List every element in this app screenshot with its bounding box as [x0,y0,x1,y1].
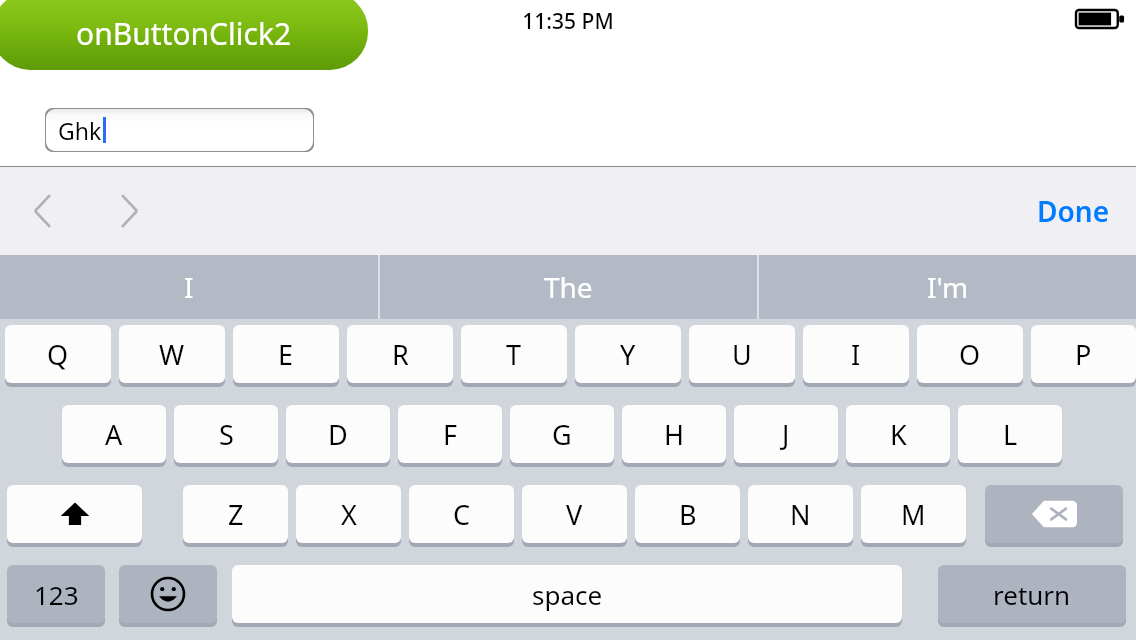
button[interactable]: X [296,485,401,545]
staticText: Ghk [58,115,102,146]
button[interactable]: Next field [100,182,158,240]
button[interactable]: onButtonClick2 [0,0,368,70]
staticText: 11:35 PM [0,7,1136,36]
button[interactable]: D [286,405,390,465]
button[interactable]: Y [575,325,681,385]
button[interactable]: return [938,565,1126,625]
button[interactable]: U [689,325,795,385]
staticText: Z [228,496,244,533]
button[interactable]: J [734,405,838,465]
button[interactable]: O [917,325,1023,385]
button[interactable]: The [380,255,757,319]
staticText: S [219,416,234,453]
button[interactable]: V [522,485,627,545]
button[interactable]: M [861,485,966,545]
staticText: R [392,336,409,373]
staticText: M [901,496,926,533]
button[interactable]: Q [5,325,111,385]
staticText: F [443,416,458,453]
button[interactable]: I [803,325,909,385]
button[interactable]: Z [183,485,288,545]
button[interactable]: Done [1029,184,1118,238]
button[interactable]: Shift [7,485,142,545]
staticText: J [782,416,790,453]
staticText: U [732,336,752,373]
staticText: D [328,416,348,453]
button[interactable]: L [958,405,1062,465]
button[interactable]: W [119,325,225,385]
button[interactable]: E [233,325,339,385]
staticText: V [566,496,583,533]
button[interactable]: B [635,485,740,545]
staticText: Y [620,336,636,373]
button[interactable]: space [232,565,902,625]
staticText: K [890,416,907,453]
button[interactable]: P [1031,325,1136,385]
button[interactable]: T [461,325,567,385]
button[interactable]: S [174,405,278,465]
staticText: H [664,416,685,453]
staticText: Done [1037,192,1110,230]
staticText: W [159,336,185,373]
button[interactable]: K [846,405,950,465]
button[interactable]: G [510,405,614,465]
staticText: X [341,496,357,533]
staticText: I [184,268,194,306]
staticText: G [552,416,572,453]
staticText: E [278,336,294,373]
button[interactable]: Ghk [45,108,314,152]
staticText: P [1075,336,1092,373]
button[interactable]: Previous field [14,182,72,240]
staticText: C [453,496,471,533]
staticText: onButtonClick2 [76,13,292,54]
staticText: A [105,416,123,453]
button[interactable]: F [398,405,502,465]
button[interactable]: A [62,405,166,465]
button[interactable]: N [748,485,853,545]
staticText: iPod [8,7,52,36]
staticText: The [544,268,593,306]
button[interactable]: I [0,255,378,319]
staticText: L [1003,416,1018,453]
staticText: T [506,336,522,373]
button[interactable]: 123 [7,565,105,625]
staticText: return [993,577,1071,612]
staticText: space [532,577,603,612]
staticText: 123 [34,577,79,612]
staticText: B [679,496,697,533]
staticText: O [959,336,981,373]
button[interactable]: I'm [759,255,1136,319]
staticText: Q [47,336,69,373]
button[interactable]: Emoji keyboard [119,565,217,625]
staticText: I'm [927,268,969,306]
button[interactable]: Delete [985,485,1123,545]
button[interactable]: H [622,405,726,465]
staticText: I [851,336,861,373]
staticText: N [790,496,811,533]
button[interactable]: R [347,325,453,385]
button[interactable]: C [409,485,514,545]
